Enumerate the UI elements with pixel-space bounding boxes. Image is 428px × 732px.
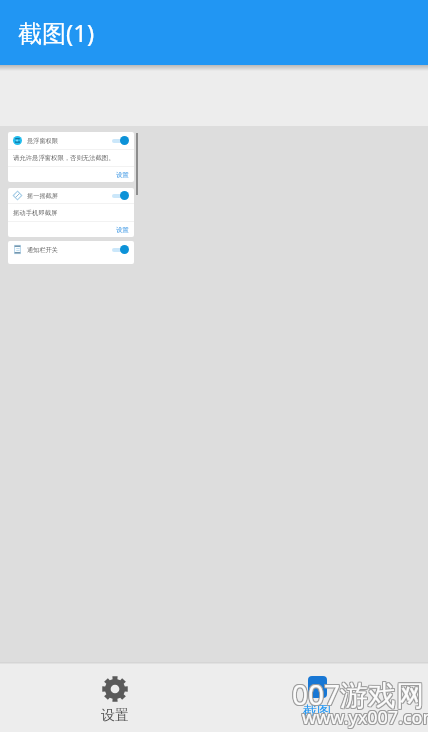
- button[interactable]: [112, 190, 130, 201]
- staticText: 设置: [101, 707, 129, 725]
- staticText: 007游戏网: [292, 674, 425, 712]
- staticText: www.yx007.com: [301, 706, 428, 731]
- staticText: www.yx007.com: [302, 706, 428, 731]
- staticText: 007游戏网: [291, 676, 424, 714]
- staticText: 007游戏网: [292, 675, 425, 713]
- staticText: 悬浮窗权限: [27, 137, 58, 145]
- staticText: www.yx007.com: [302, 704, 428, 729]
- staticText: www.yx007.com: [303, 704, 428, 729]
- staticText: 请允许悬浮窗权限，否则无法截图。: [13, 154, 115, 162]
- staticText: 007游戏网: [292, 676, 425, 714]
- button[interactable]: 悬浮窗权限: [8, 132, 134, 182]
- staticText: www.yx007.com: [301, 705, 428, 730]
- staticText: 007游戏网: [293, 675, 426, 713]
- button[interactable]: [112, 135, 130, 146]
- button[interactable]: [112, 244, 130, 255]
- staticText: 007游戏网: [291, 674, 424, 712]
- staticText: 摇一摇截屏: [27, 192, 58, 200]
- staticText: www.yx007.com: [301, 704, 428, 729]
- staticText: 通知栏开关: [27, 246, 58, 254]
- button[interactable]: 截图: [297, 670, 337, 727]
- staticText: www.yx007.com: [303, 705, 428, 730]
- button[interactable]: 设置: [95, 670, 135, 731]
- button[interactable]: 摇一摇截屏: [8, 188, 134, 237]
- staticText: www.yx007.com: [302, 705, 428, 730]
- staticText: 摇动手机即截屏: [13, 209, 58, 217]
- staticText: 007游戏网: [293, 674, 426, 712]
- staticText: 007游戏网: [293, 676, 426, 714]
- other: 截图: [308, 676, 327, 698]
- button[interactable]: 设置: [116, 171, 134, 179]
- staticText: 截图: [303, 703, 331, 721]
- button[interactable]: 通知栏开关: [8, 241, 134, 264]
- other: 设置: [102, 676, 128, 702]
- staticText: www.yx007.com: [303, 706, 428, 731]
- staticText: 007游戏网: [291, 675, 424, 713]
- button[interactable]: 设置: [116, 226, 134, 234]
- staticText: 截图(1): [18, 16, 95, 49]
